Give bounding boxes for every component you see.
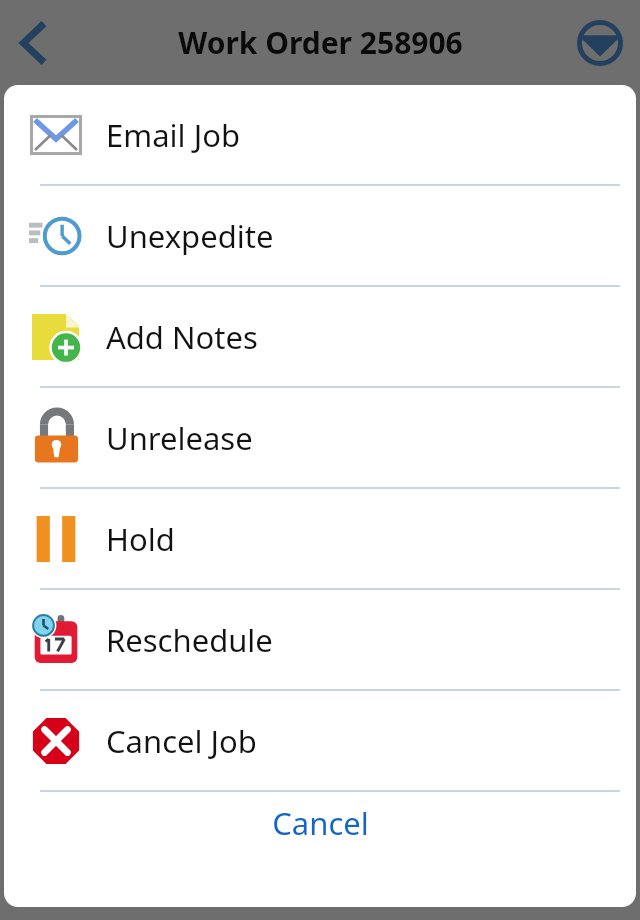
button[interactable]: Email Job xyxy=(4,85,636,184)
staticText: Unexpedite xyxy=(106,215,274,257)
staticText: Cancel Job xyxy=(106,720,257,762)
button[interactable]: Unrelease xyxy=(4,388,636,487)
button[interactable]: Cancel Job xyxy=(4,691,636,790)
staticText: Unrelease xyxy=(106,417,253,459)
button[interactable]: Reschedule xyxy=(4,590,636,689)
button[interactable]: Cancel xyxy=(4,792,636,854)
button[interactable]: Add Notes xyxy=(4,287,636,386)
button[interactable]: Back xyxy=(0,0,70,85)
button[interactable]: Unexpedite xyxy=(4,186,636,285)
staticText: Email Job xyxy=(106,114,240,156)
staticText: Reschedule xyxy=(106,619,273,661)
staticText: Hold xyxy=(106,518,175,560)
staticText: Add Notes xyxy=(106,316,258,358)
button[interactable]: Hold xyxy=(4,489,636,588)
staticText: Cancel xyxy=(272,802,369,844)
button[interactable]: More options xyxy=(560,0,640,85)
staticText: Work Order 258906 xyxy=(178,22,463,63)
